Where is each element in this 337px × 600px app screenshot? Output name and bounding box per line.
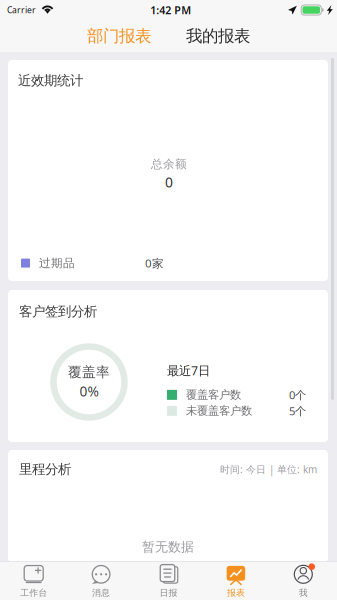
staticText: 日报 [159, 587, 177, 598]
staticText: 消息 [92, 587, 110, 598]
staticText: 暂无数据 [142, 539, 194, 555]
staticText: 0个 [289, 387, 306, 402]
staticText: 我的报表 [186, 26, 250, 46]
staticText: Carrier [7, 4, 36, 16]
staticText: 时间: 今日 | 单位: km [220, 463, 317, 476]
button[interactable]: 部门报表 [78, 20, 160, 52]
staticText: 我 [299, 587, 308, 598]
button[interactable]: 我 [270, 561, 337, 600]
staticText: 1:42 PM [150, 3, 191, 17]
staticText: 部门报表 [87, 26, 151, 46]
button[interactable]: 报表 [202, 561, 270, 600]
button[interactable]: 工作台 [0, 561, 67, 600]
staticText: 覆盖率 [68, 363, 110, 381]
button[interactable]: 日报 [135, 561, 202, 600]
button[interactable]: 我的报表 [177, 20, 259, 52]
staticText: 最近7日 [167, 362, 210, 379]
staticText: 报表 [227, 587, 245, 598]
staticText: 客户签到分析 [19, 303, 97, 320]
staticText: 未覆盖客户数 [186, 404, 252, 418]
button[interactable]: 消息 [67, 561, 135, 600]
staticText: 里程分析 [19, 461, 71, 478]
staticText: 5个 [289, 403, 306, 418]
staticText: 工作台 [20, 587, 47, 598]
staticText: 0 [165, 173, 173, 192]
staticText: 总余额 [151, 157, 187, 172]
staticText: 过期品 [39, 256, 75, 270]
staticText: 近效期统计 [18, 72, 83, 89]
staticText: 0% [79, 382, 98, 400]
staticText: 覆盖客户数 [186, 388, 241, 402]
staticText: 0家 [145, 255, 164, 271]
